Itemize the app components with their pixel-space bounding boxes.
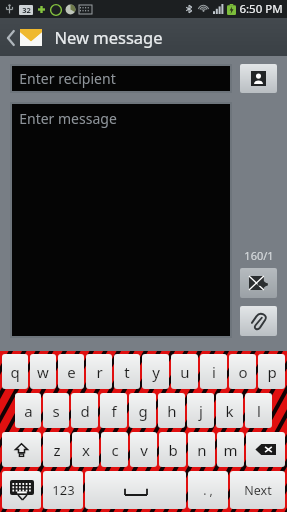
staticText: 32: [22, 5, 31, 15]
button[interactable]: 123: [43, 471, 83, 509]
staticText: b: [168, 440, 178, 460]
staticText: o: [238, 362, 248, 382]
staticText: 6:50 PM: [239, 1, 283, 17]
button[interactable]: Enter message: [12, 104, 230, 336]
button[interactable]: n: [188, 432, 215, 467]
button[interactable]: s: [43, 393, 69, 428]
staticText: f: [111, 401, 117, 421]
button[interactable]: g: [129, 393, 156, 428]
staticText: e: [67, 362, 76, 382]
staticText: m: [223, 440, 238, 460]
button[interactable]: l: [245, 393, 272, 428]
staticText: s: [52, 401, 60, 421]
button[interactable]: Contacts: [240, 64, 277, 93]
staticText: r: [96, 362, 103, 382]
button[interactable]: Shift: [2, 432, 41, 467]
button[interactable]: k: [216, 393, 243, 428]
button[interactable]: Back: [0, 18, 48, 56]
staticText: 123: [52, 481, 75, 499]
staticText: l: [257, 401, 261, 421]
button[interactable]: c: [101, 432, 128, 467]
button[interactable]: Next: [230, 471, 285, 509]
staticText: . ,: [203, 482, 213, 498]
staticText: v: [140, 440, 148, 460]
button[interactable]: m: [217, 432, 244, 467]
button[interactable]: . ,: [188, 471, 228, 509]
button[interactable]: b: [159, 432, 186, 467]
button[interactable]: Send: [240, 268, 277, 298]
staticText: q: [10, 362, 20, 382]
button[interactable]: z: [43, 432, 70, 467]
staticText: p: [267, 362, 277, 382]
staticText: 160/1: [244, 248, 274, 263]
staticText: x: [82, 440, 90, 460]
staticText: c: [111, 440, 119, 460]
button[interactable]: d: [71, 393, 98, 428]
staticText: k: [225, 401, 234, 421]
staticText: New message: [54, 26, 163, 48]
staticText: z: [53, 440, 61, 460]
button[interactable]: o: [229, 354, 256, 389]
button[interactable]: v: [130, 432, 157, 467]
staticText: y: [152, 362, 160, 382]
button[interactable]: t: [114, 354, 140, 389]
button[interactable]: Space: [85, 471, 186, 509]
staticText: Enter message: [19, 109, 117, 128]
staticText: n: [197, 440, 207, 460]
button[interactable]: f: [100, 393, 127, 428]
button[interactable]: Attach: [240, 306, 277, 336]
button[interactable]: q: [2, 354, 28, 389]
button[interactable]: Hide keyboard: [2, 471, 41, 509]
staticText: d: [80, 401, 90, 421]
staticText: i: [212, 362, 216, 382]
button[interactable]: y: [142, 354, 169, 389]
button[interactable]: p: [258, 354, 285, 389]
staticText: u: [180, 362, 190, 382]
button[interactable]: j: [187, 393, 214, 428]
staticText: Enter recipient: [19, 69, 116, 88]
button[interactable]: w: [30, 354, 56, 389]
button[interactable]: e: [58, 354, 84, 389]
staticText: a: [24, 401, 33, 421]
staticText: g: [138, 401, 148, 421]
button[interactable]: Enter recipient: [12, 66, 230, 91]
staticText: h: [167, 401, 177, 421]
button[interactable]: i: [200, 354, 227, 389]
staticText: w: [37, 362, 49, 382]
staticText: j: [199, 401, 203, 421]
button[interactable]: a: [15, 393, 41, 428]
button[interactable]: x: [72, 432, 99, 467]
staticText: Next: [244, 482, 272, 499]
button[interactable]: u: [171, 354, 198, 389]
staticText: t: [124, 362, 130, 382]
button[interactable]: Delete: [246, 432, 285, 467]
button[interactable]: h: [158, 393, 185, 428]
button[interactable]: r: [86, 354, 112, 389]
